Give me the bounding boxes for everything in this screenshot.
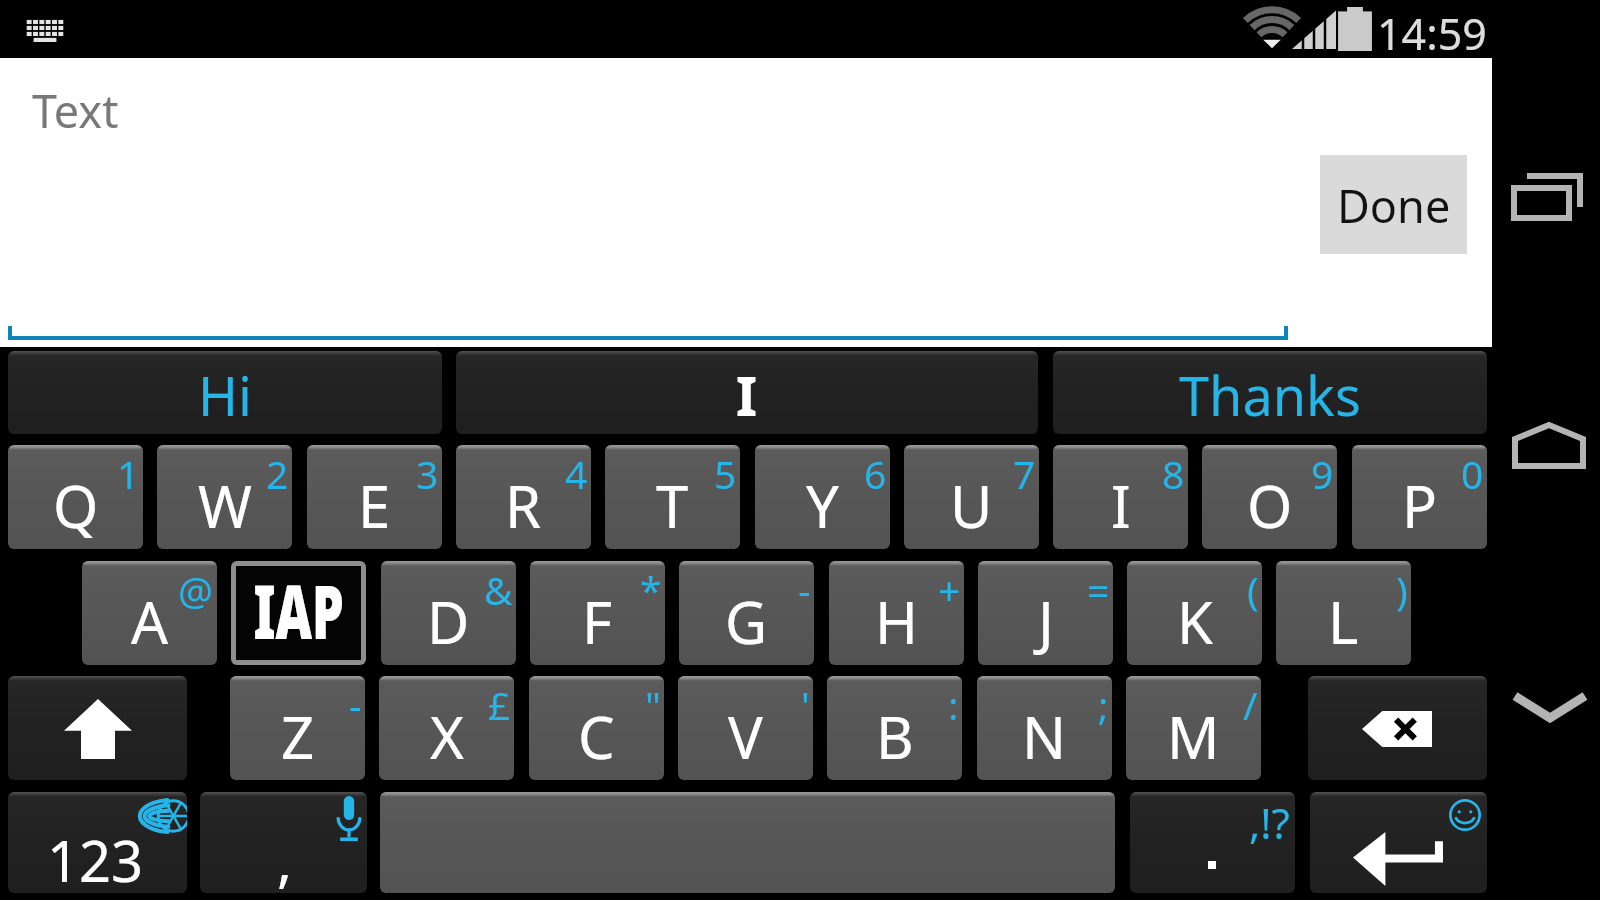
staticText: Text — [32, 80, 119, 141]
staticText: K — [1177, 582, 1213, 661]
staticText: £ — [488, 678, 511, 731]
staticText: " — [645, 678, 661, 731]
staticText: Z — [281, 697, 315, 776]
staticText: 9 — [1311, 447, 1334, 500]
staticText: Thanks — [1179, 358, 1361, 432]
button[interactable]: I — [1053, 445, 1188, 549]
button[interactable]: N — [977, 676, 1112, 780]
button[interactable]: G — [679, 561, 814, 665]
staticText: 0 — [1461, 447, 1484, 500]
button[interactable]: H — [829, 561, 964, 665]
button[interactable]: F — [530, 561, 665, 665]
staticText: 6 — [864, 447, 887, 500]
staticText: - — [349, 678, 362, 731]
staticText: 123 — [47, 822, 144, 893]
staticText: = — [1087, 563, 1110, 616]
button[interactable]: Q — [8, 445, 143, 549]
button[interactable]: Thanks — [1053, 351, 1487, 434]
staticText: @ — [178, 563, 214, 616]
staticText: E — [358, 466, 391, 545]
staticText: 1 — [117, 447, 140, 500]
staticText: F — [582, 582, 613, 661]
staticText: 7 — [1013, 447, 1036, 500]
staticText: * — [640, 563, 662, 616]
button[interactable]: Backspace — [1308, 676, 1487, 780]
staticText: G — [725, 582, 768, 661]
button[interactable]: T — [605, 445, 740, 549]
button[interactable]: B — [827, 676, 962, 780]
button[interactable]: Comma — [200, 792, 367, 893]
button[interactable]: Enter — [1310, 792, 1487, 893]
staticText: H — [875, 582, 918, 661]
button[interactable]: Space — [380, 792, 1115, 893]
staticText: 5 — [714, 447, 737, 500]
staticText: A — [131, 582, 169, 661]
button[interactable]: Hi — [8, 351, 442, 434]
staticText: W — [198, 466, 252, 545]
button[interactable]: Done — [1320, 155, 1467, 254]
staticText: J — [1038, 582, 1054, 661]
staticText: 4 — [565, 447, 588, 500]
button[interactable]: A — [82, 561, 217, 665]
staticText: Hi — [198, 358, 252, 432]
staticText: M — [1167, 697, 1220, 776]
staticText: I — [1111, 466, 1131, 545]
staticText: I — [736, 358, 758, 432]
button[interactable]: R — [456, 445, 591, 549]
staticText: B — [876, 697, 914, 776]
button[interactable]: Z — [230, 676, 365, 780]
staticText: L — [1328, 582, 1359, 661]
staticText: 14:59 — [1377, 4, 1487, 62]
staticText: Q — [53, 466, 99, 545]
button[interactable]: Recent apps — [1492, 130, 1600, 270]
button[interactable]: Back — [1492, 645, 1600, 775]
staticText: 3 — [416, 447, 439, 500]
staticText: R — [505, 466, 542, 545]
button[interactable]: W — [157, 445, 292, 549]
button[interactable]: K — [1127, 561, 1262, 665]
staticText: O — [1247, 466, 1293, 545]
staticText: Y — [806, 466, 839, 545]
button[interactable]: IAP — [231, 561, 366, 665]
staticText: 8 — [1162, 447, 1185, 500]
staticText: D — [427, 582, 470, 661]
staticText: Done — [1337, 175, 1451, 236]
staticText: ( — [1247, 563, 1259, 616]
button[interactable]: C — [529, 676, 664, 780]
button[interactable]: Home — [1492, 386, 1600, 516]
button[interactable]: Numbers — [8, 792, 187, 893]
staticText: C — [578, 697, 615, 776]
staticText: N — [1022, 697, 1067, 776]
staticText: ,!? — [1249, 794, 1290, 851]
button[interactable]: V — [678, 676, 813, 780]
staticText: ) — [1396, 563, 1408, 616]
staticText: U — [950, 466, 993, 545]
staticText: , — [277, 822, 293, 893]
button[interactable]: U — [904, 445, 1039, 549]
staticText: & — [484, 563, 513, 616]
staticText: IAP — [253, 561, 344, 661]
staticText: - — [798, 563, 811, 616]
button[interactable]: O — [1202, 445, 1337, 549]
staticText: / — [1243, 678, 1258, 731]
button[interactable]: I — [456, 351, 1038, 434]
staticText: T — [656, 466, 689, 545]
button[interactable]: L — [1276, 561, 1411, 665]
staticText: : — [948, 678, 959, 731]
button[interactable]: M — [1126, 676, 1261, 780]
staticText: + — [938, 563, 961, 616]
staticText: 2 — [266, 447, 289, 500]
button[interactable]: P — [1352, 445, 1487, 549]
button[interactable]: X — [379, 676, 514, 780]
button[interactable]: Period — [1130, 792, 1295, 893]
staticText: V — [728, 697, 763, 776]
button[interactable]: J — [978, 561, 1113, 665]
button[interactable]: Shift — [8, 676, 187, 780]
staticText: P — [1402, 466, 1438, 545]
staticText: ' — [801, 678, 810, 731]
button[interactable]: E — [307, 445, 442, 549]
button[interactable]: D — [381, 561, 516, 665]
staticText: ; — [1098, 678, 1109, 731]
button[interactable]: Y — [755, 445, 890, 549]
staticText: X — [430, 697, 464, 776]
